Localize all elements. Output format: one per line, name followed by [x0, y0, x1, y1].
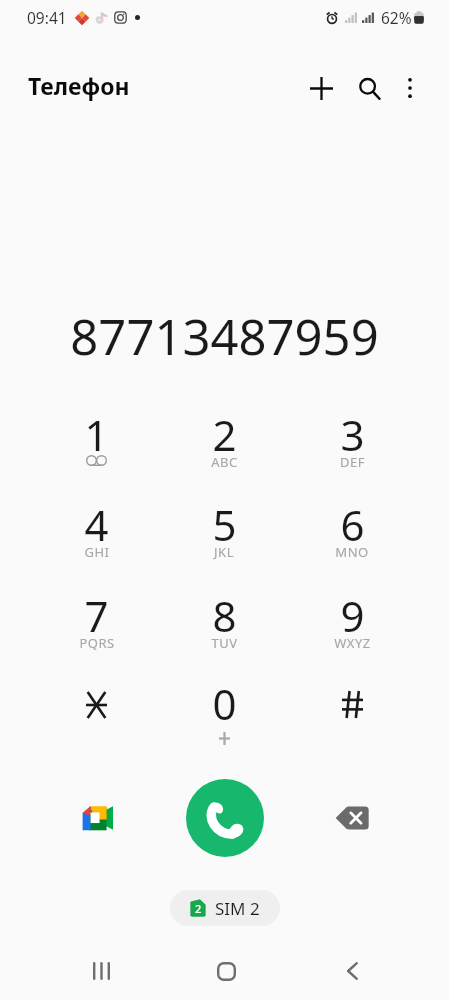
staticText: JKL: [214, 543, 234, 561]
button[interactable]: 9: [288, 587, 416, 661]
staticText: 87713487959: [70, 303, 379, 370]
staticText: 0: [212, 675, 237, 732]
button[interactable]: 2: [170, 890, 280, 926]
staticText: 4: [84, 496, 109, 553]
button[interactable]: 6: [288, 496, 416, 570]
staticText: 6: [340, 496, 365, 553]
staticText: 62%: [381, 7, 412, 28]
button[interactable]: [33, 675, 160, 749]
button[interactable]: 1: [33, 406, 160, 480]
button[interactable]: 3: [288, 406, 416, 480]
staticText: TUV: [211, 634, 238, 652]
staticText: Телефон: [28, 70, 130, 101]
button[interactable]: Recents: [80, 950, 122, 992]
button[interactable]: 2: [160, 406, 288, 480]
staticText: 7: [84, 587, 109, 644]
staticText: 3: [340, 406, 365, 463]
button[interactable]: Call: [186, 779, 264, 857]
button[interactable]: 7: [33, 587, 160, 661]
staticText: SIM 2: [215, 897, 260, 920]
button[interactable]: More options: [386, 64, 434, 112]
staticText: 9: [340, 587, 365, 644]
button[interactable]: 5: [160, 496, 288, 570]
staticText: GHI: [84, 543, 110, 561]
staticText: MNO: [335, 543, 369, 561]
staticText: 8: [212, 587, 237, 644]
button[interactable]: 0: [160, 675, 288, 749]
staticText: 2: [195, 901, 202, 916]
button[interactable]: Search: [345, 65, 393, 113]
staticText: 1: [84, 406, 109, 463]
staticText: WXYZ: [334, 634, 371, 652]
staticText: PQRS: [79, 634, 115, 652]
button[interactable]: 8: [160, 587, 288, 661]
button[interactable]: Home: [205, 950, 247, 992]
staticText: 5: [212, 496, 237, 553]
staticText: 09:41: [27, 7, 67, 28]
staticText: ABC: [211, 453, 238, 471]
staticText: DEF: [340, 453, 365, 471]
button[interactable]: Backspace: [329, 795, 375, 841]
staticText: 2: [212, 406, 237, 463]
button[interactable]: Add contact: [297, 64, 345, 112]
button[interactable]: Back: [331, 950, 373, 992]
button[interactable]: 4: [33, 496, 160, 570]
button[interactable]: Video call: [74, 795, 120, 841]
button[interactable]: [288, 675, 416, 749]
